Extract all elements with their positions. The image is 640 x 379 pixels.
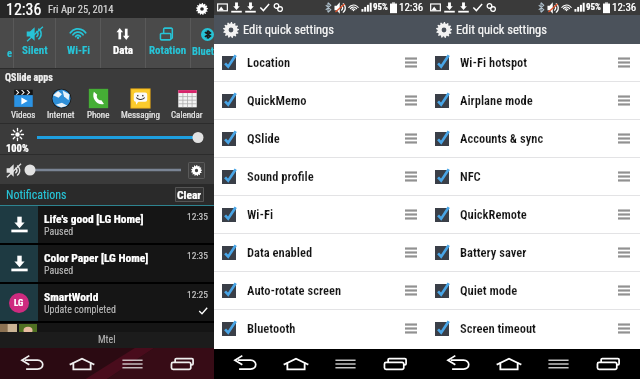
button[interactable]: Data [101,18,145,68]
staticText: Sound profile [247,169,314,184]
button[interactable]: Wi-Fi [56,18,100,68]
staticText: Phone [87,110,110,121]
staticText: Quiet mode [460,283,518,298]
staticText: Clear [177,188,202,201]
button[interactable]: Accounts & sync [427,120,640,157]
staticText: QSlide apps [5,72,53,84]
staticText: Location [247,55,291,70]
staticText: Data [113,44,133,57]
staticText: Screen timeout [460,321,536,336]
button[interactable]: Edit quick settings [214,15,427,44]
button[interactable]: Calendar [171,88,203,121]
button[interactable]: Home [64,348,100,379]
staticText: QuickMemo [247,93,307,108]
button[interactable]: Bluetooth [191,18,214,68]
button[interactable]: Videos [11,88,36,121]
staticText: Internet [47,110,75,121]
staticText: 12:35 [187,250,208,261]
button[interactable]: Phone [87,88,110,121]
button[interactable]: Recent apps [164,348,200,379]
staticText: Airplane mode [460,93,533,108]
staticText: Bluetoo [192,45,215,57]
staticText: Wi-Fi [247,207,274,222]
button[interactable]: NFC [427,158,640,195]
button[interactable]: Silent [14,18,55,68]
button[interactable]: Quiet mode [427,272,640,309]
button[interactable]: Messaging [121,88,160,121]
button[interactable]: Airplane mode [427,82,640,119]
staticText: e [7,47,13,59]
button[interactable]: Recent apps [590,349,627,379]
button[interactable]: Screen timeout [427,310,640,347]
button[interactable]: Clear [176,188,203,201]
button[interactable]: Settings [194,1,210,17]
button[interactable]: Back [440,349,477,379]
staticText: Silent [22,44,48,57]
button[interactable]: Battery saver [427,234,640,271]
button[interactable]: Menu [327,349,364,379]
staticText: Bluetooth [247,321,296,336]
button[interactable]: Recent apps [377,349,414,379]
staticText: Color Paper [LG Home] [44,251,149,264]
button[interactable]: Data enabled [214,234,427,271]
button[interactable]: Bluetooth [214,310,427,347]
staticText: Calendar [171,110,203,121]
button[interactable]: Internet [47,88,75,121]
staticText: Battery saver [460,245,527,260]
staticText: 12:36 [612,1,637,14]
button[interactable]: Volume [0,155,214,184]
staticText: Notifications [6,188,67,202]
button[interactable]: LG [0,284,214,321]
button[interactable]: Color Paper [LG Home] [0,245,214,282]
button[interactable]: Home [277,349,314,379]
staticText: Messaging [121,110,160,121]
staticText: Accounts & sync [460,131,544,146]
button[interactable]: Sound settings [189,163,204,178]
button[interactable]: Brightness [0,124,214,154]
staticText: Life's good [LG Home] [44,212,144,225]
staticText: 12:36 [6,0,42,18]
staticText: Videos [11,110,36,121]
button[interactable]: Life's good [LG Home] [0,206,214,243]
staticText: Paused [44,265,74,277]
button[interactable]: Back [14,348,50,379]
button[interactable]: Edit quick settings [427,15,640,44]
staticText: QSlide [247,131,280,146]
staticText: Paused [44,226,74,238]
staticText: Rotation [149,44,187,57]
staticText: QuickRemote [460,207,527,222]
button[interactable]: Menu [540,349,577,379]
staticText: 12:25 [187,289,208,300]
button[interactable]: Sound [0,18,13,68]
staticText: Edit quick settings [243,22,334,37]
staticText: NFC [460,169,481,184]
button[interactable]: QSlide [214,120,427,157]
button[interactable]: Rotation [146,18,190,68]
staticText: Wi-Fi [67,44,90,57]
staticText: Mtel [98,334,116,346]
button[interactable]: Auto-rotate screen [214,272,427,309]
button[interactable]: Location [214,44,427,81]
staticText: 12:35 [187,211,208,222]
staticText: Auto-rotate screen [247,283,342,298]
staticText: Data enabled [247,245,313,260]
button[interactable]: Wi-Fi [214,196,427,233]
button[interactable]: Menu [114,348,150,379]
staticText: SmartWorld [44,290,99,303]
staticText: 95% [586,2,601,13]
staticText: Fri Apr 25, 2014 [48,3,114,15]
button[interactable]: QuickMemo [214,82,427,119]
button[interactable]: Sound profile [214,158,427,195]
button[interactable]: Back [227,349,264,379]
staticText: Wi-Fi hotspot [460,55,528,70]
staticText: 100% [6,142,29,154]
button[interactable]: Wi-Fi hotspot [427,44,640,81]
button[interactable]: Home [490,349,527,379]
staticText: 12:36 [399,1,424,14]
staticText: 95% [373,2,388,13]
staticText: Edit quick settings [456,22,547,37]
button[interactable]: QuickRemote [427,196,640,233]
staticText: LG [14,298,24,309]
staticText: Update completed [44,304,116,316]
